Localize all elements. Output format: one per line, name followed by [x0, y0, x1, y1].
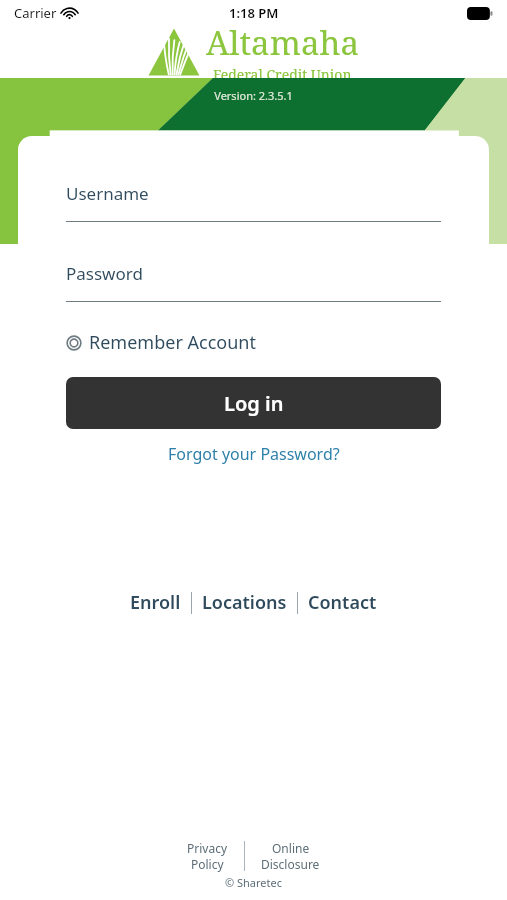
button[interactable]: Contact: [298, 586, 387, 619]
button[interactable]: Password: [66, 262, 441, 302]
staticText: Username: [66, 182, 149, 205]
button[interactable]: Enroll: [120, 586, 191, 619]
staticText: Locations: [202, 590, 287, 615]
staticText: Remember Account: [89, 330, 256, 355]
staticText: Privacy: [187, 840, 228, 856]
staticText: Carrier: [14, 4, 57, 22]
staticText: Altamaha: [206, 20, 359, 65]
staticText: Federal Credit Union: [213, 65, 352, 84]
staticText: 1:18 PM: [229, 4, 279, 22]
button[interactable]: Log in: [66, 377, 441, 429]
button[interactable]: Forgot your Password?: [66, 443, 441, 465]
staticText: Policy: [191, 856, 224, 872]
staticText: Forgot your Password?: [168, 443, 340, 465]
staticText: Password: [66, 262, 143, 285]
staticText: Version: 2.3.5.1: [0, 88, 507, 103]
staticText: Enroll: [130, 590, 181, 615]
button[interactable]: Username: [66, 182, 441, 222]
button[interactable]: Privacy: [187, 840, 228, 872]
button[interactable]: Locations: [192, 586, 297, 619]
staticText: Contact: [308, 590, 377, 615]
button[interactable]: Online: [261, 840, 320, 872]
staticText: Disclosure: [261, 856, 320, 872]
button[interactable]: Remember Account: [66, 330, 256, 355]
staticText: Log in: [224, 390, 284, 417]
staticText: © Sharetec: [225, 875, 283, 890]
staticText: Online: [272, 840, 310, 856]
